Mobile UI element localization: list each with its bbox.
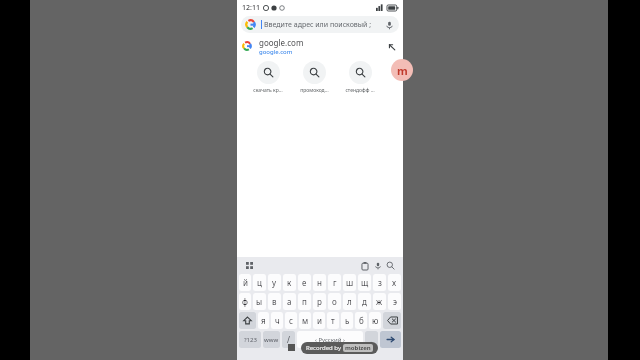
- button[interactable]: и: [313, 312, 325, 329]
- button[interactable]: .: [365, 331, 378, 348]
- staticText: ь: [345, 315, 350, 326]
- button[interactable]: с: [285, 312, 297, 329]
- staticText: ш: [346, 277, 354, 288]
- staticText: в: [272, 296, 277, 307]
- staticText: м: [302, 315, 309, 326]
- button[interactable]: Key: [239, 312, 256, 329]
- button[interactable]: х: [388, 274, 401, 291]
- staticText: ж: [376, 296, 383, 307]
- button[interactable]: Account: [391, 59, 413, 81]
- staticText: о: [332, 296, 337, 307]
- button[interactable]: н: [313, 274, 326, 291]
- staticText: ф: [242, 296, 248, 307]
- staticText: к: [287, 277, 292, 288]
- button[interactable]: Введите адрес или поисковый ;: [241, 16, 399, 33]
- button[interactable]: я: [258, 312, 269, 329]
- staticText: у: [272, 277, 277, 288]
- staticText: ч: [275, 315, 280, 326]
- staticText: г: [333, 277, 337, 288]
- button[interactable]: з: [373, 274, 386, 291]
- staticText: я: [261, 315, 266, 326]
- button[interactable]: а: [283, 293, 296, 310]
- button[interactable]: д: [358, 293, 371, 310]
- button[interactable]: о: [328, 293, 341, 310]
- staticText: google.com: [259, 37, 304, 48]
- staticText: ы: [256, 296, 263, 307]
- staticText: а: [287, 296, 292, 307]
- button[interactable]: й: [239, 274, 251, 291]
- staticText: google.com: [259, 48, 293, 56]
- button[interactable]: Go: [380, 331, 401, 348]
- button[interactable]: м: [299, 312, 311, 329]
- button[interactable]: ш: [343, 274, 356, 291]
- button[interactable]: Keyboard menu: [243, 259, 256, 272]
- button[interactable]: ь: [341, 312, 353, 329]
- button[interactable]: к: [283, 274, 296, 291]
- staticText: т: [331, 315, 335, 326]
- button[interactable]: р: [313, 293, 326, 310]
- button[interactable]: ы: [253, 293, 266, 310]
- button[interactable]: ‹ Русский ›: [297, 331, 363, 348]
- button[interactable]: б: [355, 312, 367, 329]
- staticText: х: [392, 277, 397, 288]
- staticText: mobizen: [345, 344, 371, 352]
- button[interactable]: щ: [358, 274, 371, 291]
- button[interactable]: т: [327, 312, 339, 329]
- staticText: www: [264, 336, 279, 344]
- staticText: ?123: [244, 336, 257, 344]
- staticText: 12:11: [242, 3, 260, 13]
- button[interactable]: скачать кр…: [245, 61, 291, 94]
- button[interactable]: www: [263, 331, 280, 348]
- button[interactable]: Voice search: [383, 19, 395, 31]
- staticText: промокод…: [300, 87, 329, 94]
- staticText: m: [397, 63, 408, 78]
- button[interactable]: стендофф …: [337, 61, 383, 94]
- button[interactable]: э: [388, 293, 401, 310]
- button[interactable]: г: [328, 274, 341, 291]
- staticText: ц: [257, 277, 262, 288]
- button[interactable]: ?123: [239, 331, 261, 348]
- staticText: щ: [361, 277, 369, 288]
- button[interactable]: Key: [383, 312, 401, 329]
- button[interactable]: п: [298, 293, 311, 310]
- staticText: л: [347, 296, 352, 307]
- staticText: ю: [372, 315, 379, 326]
- staticText: скачать кр…: [253, 87, 283, 94]
- button[interactable]: у: [268, 274, 281, 291]
- staticText: р: [317, 296, 322, 307]
- staticText: н: [317, 277, 322, 288]
- staticText: /: [287, 334, 290, 345]
- button[interactable]: Insert suggestion: [385, 40, 398, 53]
- button[interactable]: в: [268, 293, 281, 310]
- button[interactable]: ю: [369, 312, 381, 329]
- button[interactable]: google.com: [237, 34, 403, 58]
- button[interactable]: Search: [384, 259, 397, 272]
- button[interactable]: Voice input: [371, 259, 384, 272]
- button[interactable]: ж: [373, 293, 386, 310]
- button[interactable]: е: [298, 274, 311, 291]
- button[interactable]: ф: [239, 293, 251, 310]
- button[interactable]: Clipboard: [358, 259, 371, 272]
- staticText: .: [370, 334, 373, 345]
- staticText: д: [362, 296, 367, 307]
- button[interactable]: промокод…: [291, 61, 337, 94]
- staticText: ‹ Русский ›: [315, 336, 345, 344]
- button[interactable]: /: [282, 331, 295, 348]
- staticText: Введите адрес или поисковый ;: [264, 20, 372, 30]
- staticText: с: [289, 315, 293, 326]
- staticText: б: [359, 315, 364, 326]
- staticText: э: [393, 296, 397, 307]
- staticText: з: [378, 277, 382, 288]
- button[interactable]: л: [343, 293, 356, 310]
- staticText: Recorded by: [306, 344, 343, 352]
- staticText: и: [317, 315, 322, 326]
- staticText: е: [302, 277, 307, 288]
- button[interactable]: ц: [253, 274, 266, 291]
- staticText: стендофф …: [345, 87, 375, 94]
- staticText: й: [243, 277, 248, 288]
- staticText: п: [302, 296, 307, 307]
- button[interactable]: ч: [271, 312, 283, 329]
